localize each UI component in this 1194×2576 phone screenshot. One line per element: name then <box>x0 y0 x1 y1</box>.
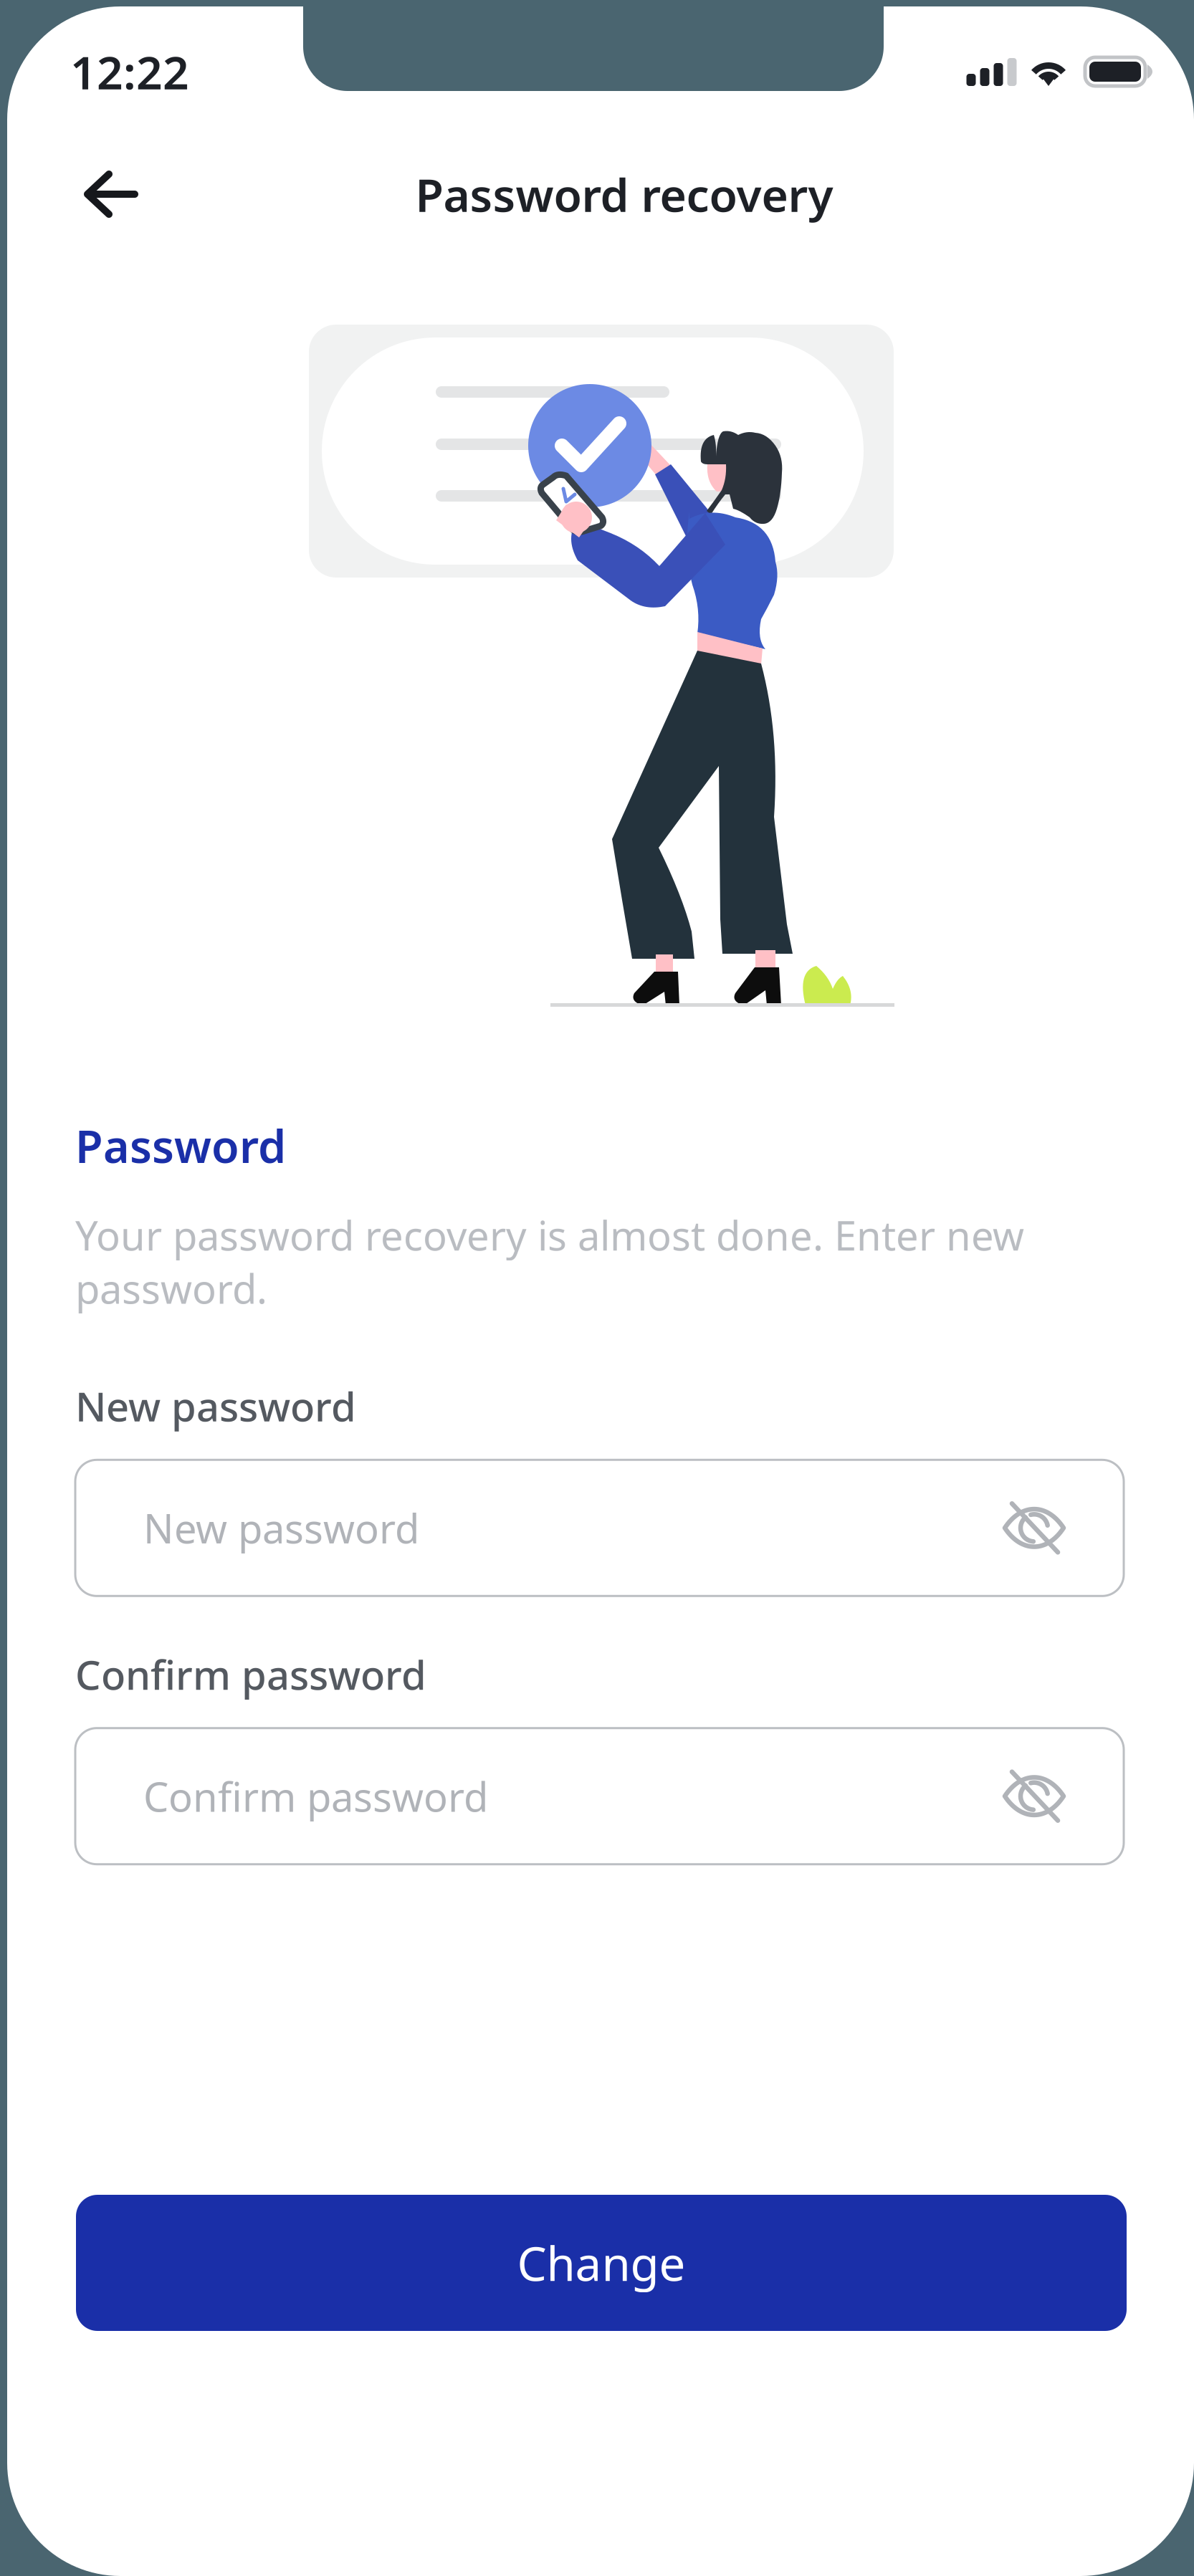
staticText: Your password recovery is almost done. E… <box>75 1208 1024 1315</box>
staticText: New password <box>75 1379 356 1433</box>
button[interactable]: Change <box>76 2195 1127 2331</box>
button[interactable]: Show Confirm password <box>984 1746 1084 1846</box>
staticText: Change <box>517 2232 686 2294</box>
staticText: Confirm password <box>75 1648 426 1701</box>
staticText: 12:22 <box>70 41 189 102</box>
staticText: Confirm password <box>143 1770 488 1823</box>
button[interactable]: Show New password <box>984 1478 1084 1578</box>
staticText: New password <box>143 1501 419 1555</box>
staticText: Password <box>75 1116 286 1175</box>
button[interactable]: Back <box>53 148 168 241</box>
staticText: Password recovery <box>415 164 833 225</box>
